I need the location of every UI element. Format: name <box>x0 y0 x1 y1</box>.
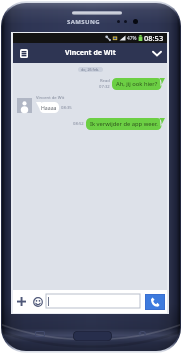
staticText: 08:53 <box>144 33 164 43</box>
button[interactable]: Expand <box>150 47 163 60</box>
staticText: Vincent de Wit <box>36 95 65 101</box>
button[interactable]: Back <box>138 330 147 337</box>
button[interactable]: Add attachment <box>13 290 30 313</box>
button[interactable]: Menu <box>35 331 45 337</box>
staticText: Ik verwijder de app weer. <box>90 120 158 128</box>
button[interactable]: Ah, jij ook hier? <box>116 80 158 88</box>
staticText: do, 26 feb. <box>81 67 100 72</box>
button[interactable]: Ik verwijder de app weer. <box>90 120 158 128</box>
button[interactable]: Haaaa <box>41 104 57 111</box>
button[interactable]: Emoji <box>30 290 46 313</box>
staticText: Haaaa <box>41 104 57 111</box>
button[interactable]: Call <box>145 294 165 310</box>
staticText: Ah, jij ook hier? <box>116 80 158 88</box>
staticText: 08:52 <box>73 121 84 127</box>
staticText: Vincent de Wit <box>65 48 116 58</box>
staticText: Read <box>100 78 110 84</box>
button[interactable] <box>46 294 140 308</box>
staticText: 07:32 <box>99 84 110 90</box>
button[interactable]: Contact info <box>17 47 30 60</box>
button[interactable]: Home <box>73 331 112 341</box>
staticText: SAMSUNG <box>67 18 100 26</box>
staticText: 47% <box>127 35 137 42</box>
staticText: 08:35 <box>61 105 72 111</box>
